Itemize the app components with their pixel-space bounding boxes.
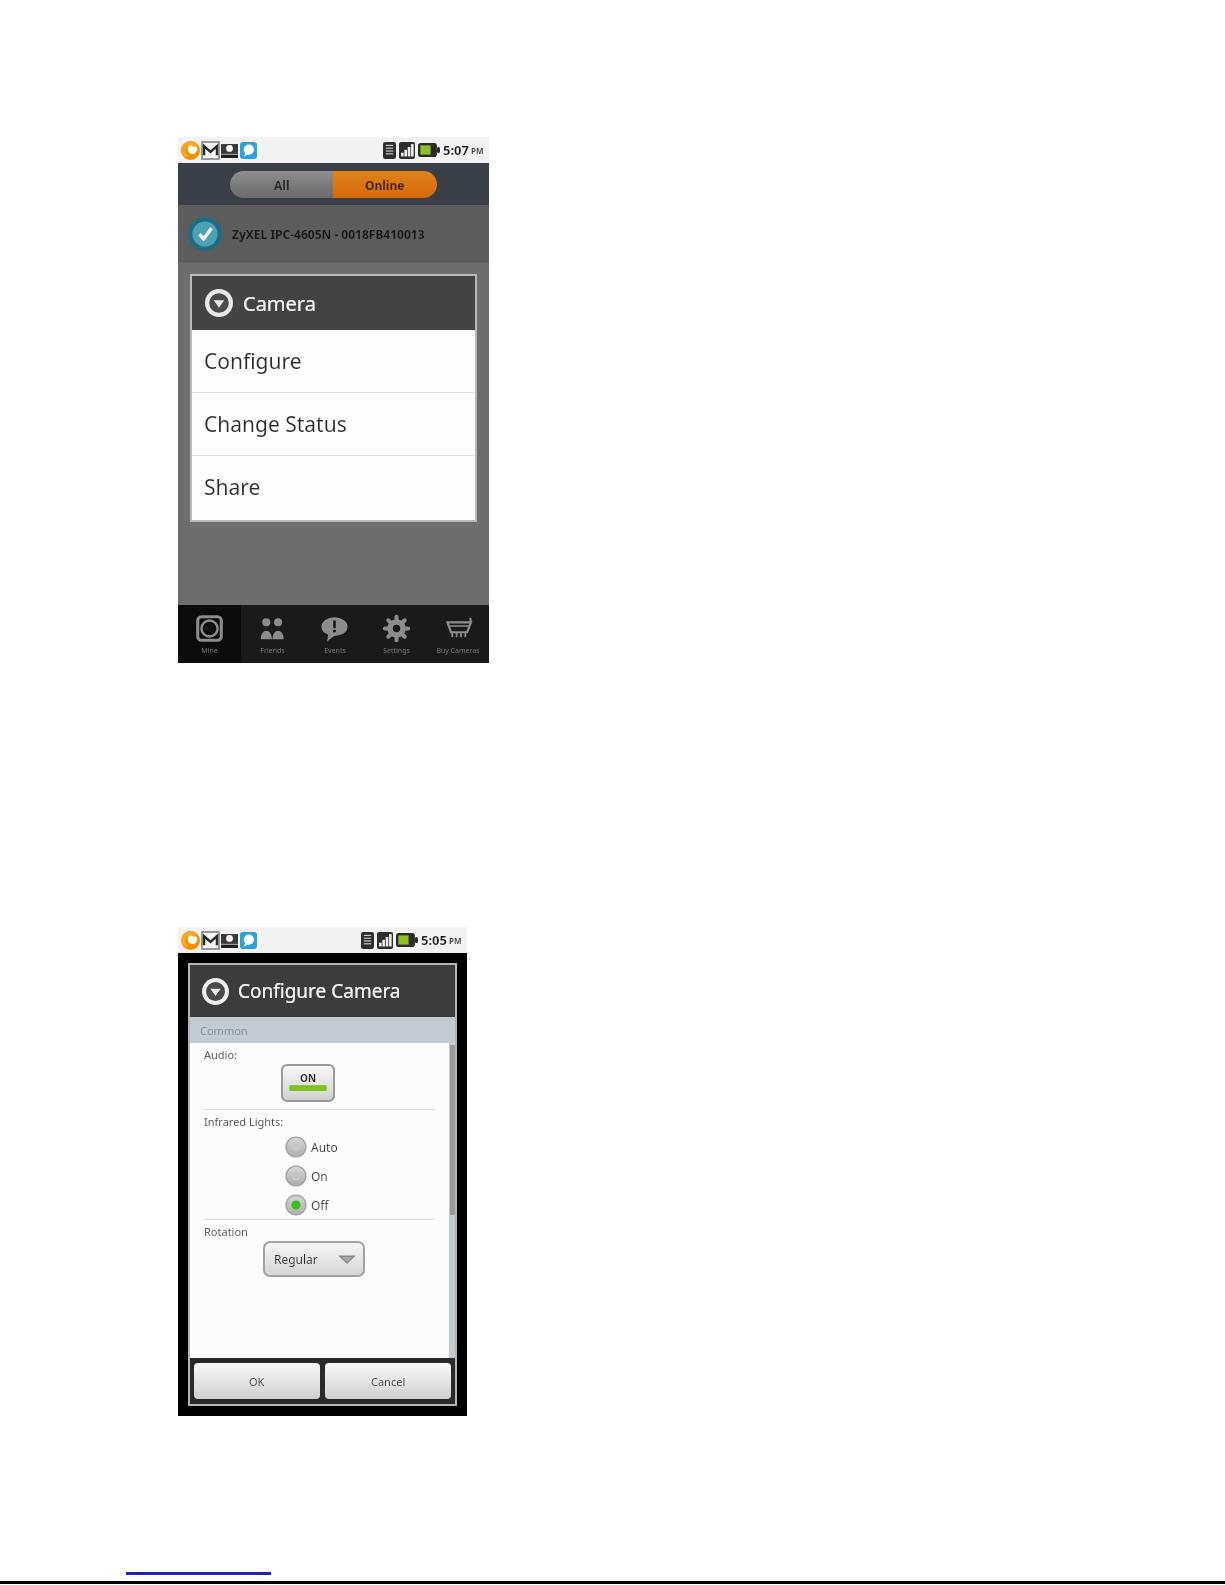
staticText: Auto — [311, 1139, 338, 1155]
button[interactable]: Share — [192, 456, 475, 518]
button[interactable]: Regular — [264, 1242, 364, 1276]
staticText: ZyXEL IPC-4605N - 0018FB410013 — [232, 226, 425, 242]
staticText: Buy Cameras — [436, 646, 480, 656]
button[interactable]: Configure — [192, 330, 475, 392]
staticText: Regular — [274, 1251, 318, 1267]
button[interactable]: ON — [282, 1065, 334, 1101]
staticText: Infrared Lights: — [204, 1114, 284, 1129]
button[interactable]: Auto — [190, 1132, 449, 1161]
staticText: All — [274, 177, 290, 193]
staticText: Change Status — [204, 410, 347, 439]
button[interactable]: Online — [333, 171, 437, 198]
staticText: Camera — [243, 290, 316, 317]
staticText: Settings — [383, 646, 410, 656]
staticText: Configure Camera — [238, 978, 401, 1004]
staticText: PM — [449, 935, 462, 946]
staticText: Events — [324, 646, 346, 656]
button[interactable]: On — [190, 1161, 449, 1190]
staticText: Configure — [204, 347, 302, 376]
staticText: 5:05 — [421, 931, 447, 949]
button[interactable]: Friends — [241, 605, 303, 663]
staticText: Rotation — [204, 1224, 248, 1239]
button[interactable]: Settings — [365, 605, 427, 663]
button[interactable]: Buy Cameras — [427, 605, 489, 663]
staticText: Share — [204, 473, 261, 502]
staticText: On — [311, 1168, 328, 1184]
staticText: Common — [200, 1023, 248, 1038]
button[interactable]: Mine — [178, 605, 241, 663]
staticText: 5:07 — [443, 141, 469, 159]
staticText: Off — [311, 1197, 329, 1213]
staticText: Friends — [260, 646, 285, 656]
staticText: PM — [471, 145, 484, 156]
button[interactable]: Events — [303, 605, 365, 663]
staticText: Online — [365, 177, 405, 193]
button[interactable]: All — [230, 171, 333, 198]
button[interactable]: Change Status — [192, 393, 475, 455]
staticText: OK — [249, 1374, 265, 1389]
staticText: Cancel — [371, 1374, 406, 1389]
button[interactable]: Off — [190, 1190, 449, 1219]
staticText: Mine — [201, 646, 218, 656]
staticText: Audio: — [204, 1047, 238, 1062]
button[interactable]: ZyXEL IPC-4605N - 0018FB410013 — [178, 205, 489, 263]
staticText: ON — [300, 1071, 317, 1085]
button[interactable]: Cancel — [325, 1363, 451, 1399]
button[interactable]: OK — [194, 1363, 320, 1399]
